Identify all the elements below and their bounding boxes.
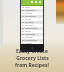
button[interactable]: Grocery item	[21, 9, 43, 12]
button[interactable]: Grocery item	[21, 33, 43, 36]
button[interactable]: Grocery item	[21, 6, 43, 9]
button[interactable]: Grocery item	[21, 42, 43, 44]
button[interactable]: Grocery item	[21, 24, 43, 27]
button[interactable]: Grocery item	[21, 21, 43, 24]
button[interactable]: App bar	[21, 0, 43, 5]
staticText: from Recipes!	[15, 62, 49, 69]
button[interactable]: Phone preview of grocery list app	[20, 0, 44, 52]
staticText: Grocery Lists	[16, 55, 49, 62]
staticText: Easily Create	[16, 48, 48, 55]
button[interactable]: Grocery item	[21, 27, 43, 30]
button[interactable]: Grocery item	[21, 18, 43, 21]
button[interactable]: Grocery item	[21, 12, 43, 15]
button[interactable]: Grocery item	[21, 15, 43, 18]
button[interactable]: Grocery item	[21, 36, 43, 39]
button[interactable]: Grocery item	[21, 39, 43, 42]
button[interactable]: Grocery item	[21, 30, 43, 33]
